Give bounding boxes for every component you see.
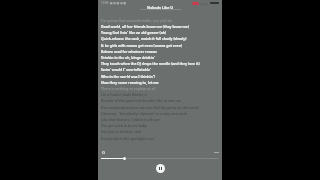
staticText: You get a job in to me baby: [101, 123, 147, 128]
button[interactable]: Share: [213, 149, 219, 155]
staticText: I'm a fuckin' dodo Bambi, it: [101, 92, 148, 97]
staticText: Nobody Like U: [147, 5, 174, 9]
staticText: Cameron, "Everybody's famous" in a way n…: [101, 111, 188, 116]
staticText: Dead world, all her friends know me (the…: [101, 24, 190, 29]
staticText: They touch when the DJ drops the needle …: [101, 61, 200, 66]
staticText: Got you so terrible, that: [101, 129, 142, 134]
staticText: 4*TOWN (From Disney/Pixar Turning Red): [140, 8, 181, 11]
staticText: Who in the world was I thinkin'?: [101, 74, 156, 79]
button[interactable]: Pause: [156, 164, 165, 173]
staticText: ■ ■ ■: [200, 2, 209, 5]
staticText: Now they come running to, let me: [101, 80, 159, 85]
staticText: I'm gonna feel uncomfortable, yes y'all …: [101, 18, 172, 23]
staticText: 12:06 ■ ● ■ ● ■: [101, 1, 127, 5]
staticText: Everybody in the spotlight now: [101, 136, 154, 141]
staticText: There is nothing to explain at all: [101, 86, 156, 91]
staticText: Reborn mad for whatever reason: [101, 49, 157, 54]
staticText: Does anybody/anyone ask you feel the par…: [101, 105, 199, 110]
staticText: Swim' would I' overinflatable': [101, 67, 151, 72]
staticText: Like that feature, I taken it all now: [101, 117, 160, 122]
staticText: Young God livin' like an old geezer (ah): [101, 30, 167, 35]
staticText: Drinkin in the uh, kinga drinkin': [101, 55, 155, 60]
staticText: Runnin' of the past/mid-decades like in …: [101, 98, 182, 103]
button[interactable]: Connect to a device: [101, 150, 106, 155]
staticText: Quick-release the cash, watch it fall sl…: [101, 36, 187, 41]
staticText: It be girls with mama get even (mama get…: [101, 43, 183, 48]
